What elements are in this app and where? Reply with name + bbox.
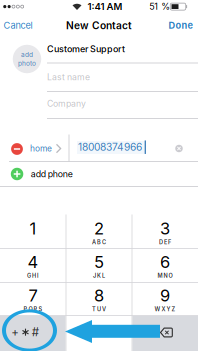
staticText: 5 bbox=[94, 252, 104, 272]
staticText: Cancel bbox=[3, 20, 32, 31]
staticText: M N O bbox=[157, 272, 172, 279]
button[interactable]: 7 bbox=[0, 281, 66, 314]
button[interactable]: Cancel bbox=[3, 20, 32, 31]
staticText: Customer Support bbox=[47, 44, 125, 54]
button[interactable]: 1 bbox=[0, 214, 66, 247]
button[interactable]: 2 bbox=[66, 214, 132, 247]
button[interactable]: 6 bbox=[132, 248, 198, 281]
button[interactable]: 9 bbox=[132, 281, 198, 314]
button[interactable]: 5 bbox=[66, 248, 132, 281]
staticText: T U V bbox=[92, 306, 106, 313]
button[interactable]: Delete bbox=[132, 315, 198, 350]
staticText: 3 bbox=[160, 219, 170, 239]
staticText: 51 % bbox=[149, 1, 170, 12]
staticText: A B C bbox=[92, 239, 106, 246]
staticText: add bbox=[21, 51, 33, 59]
staticText: 6 bbox=[160, 252, 170, 272]
staticText: 4 bbox=[27, 252, 38, 272]
staticText: + bbox=[11, 325, 19, 339]
staticText: G H I bbox=[27, 272, 39, 279]
staticText: home bbox=[30, 143, 52, 154]
staticText: 7 bbox=[28, 286, 37, 306]
staticText: P Q R S bbox=[23, 306, 42, 313]
staticText: 1:41 AM bbox=[87, 1, 122, 12]
button[interactable]: Add photo bbox=[13, 45, 41, 73]
button[interactable]: 8 bbox=[66, 281, 132, 314]
button[interactable]: 3 bbox=[132, 214, 198, 247]
staticText: J K L bbox=[93, 272, 105, 279]
staticText: photo bbox=[18, 59, 36, 67]
button[interactable]: add phone bbox=[0, 161, 198, 186]
staticText: 1 bbox=[29, 219, 36, 239]
staticText: 2 bbox=[94, 219, 104, 239]
button[interactable]: home bbox=[30, 143, 52, 154]
staticText: New Contact bbox=[66, 19, 132, 32]
staticText: Last name bbox=[47, 72, 90, 82]
button[interactable]: + bbox=[0, 315, 58, 350]
button[interactable]: Remove phone number bbox=[11, 143, 23, 155]
staticText: 18008374966 bbox=[78, 141, 142, 153]
staticText: 8 bbox=[94, 286, 104, 306]
staticText: W X Y Z bbox=[154, 306, 175, 313]
staticText: D E F bbox=[159, 239, 171, 246]
staticText: 9 bbox=[160, 286, 170, 306]
staticText: Company bbox=[47, 98, 86, 109]
staticText: add phone bbox=[31, 169, 73, 179]
button[interactable]: Done bbox=[168, 20, 192, 31]
button[interactable]: Clear text bbox=[175, 145, 183, 152]
button[interactable]: 4 bbox=[0, 248, 66, 281]
staticText: Done bbox=[168, 20, 192, 31]
staticText: # bbox=[32, 325, 39, 339]
